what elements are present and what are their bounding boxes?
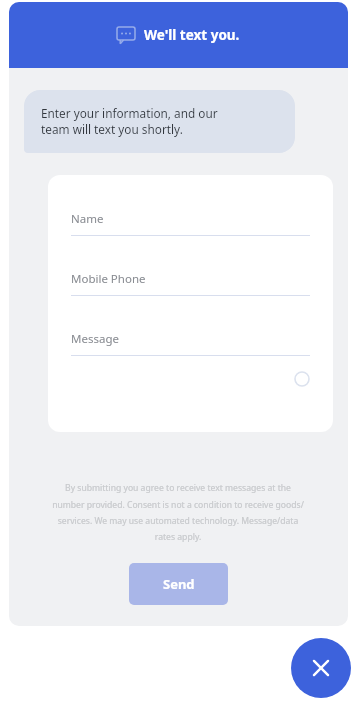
staticText: Enter your information, and our team wil…: [41, 105, 218, 138]
staticText: We'll text you.: [144, 26, 240, 44]
staticText: Message: [71, 331, 119, 347]
staticText: Send: [163, 575, 195, 593]
staticText: Mobile Phone: [71, 271, 146, 287]
button[interactable]: Send: [129, 563, 228, 605]
button[interactable]: Message: [71, 331, 310, 356]
staticText: Name: [71, 211, 104, 227]
button[interactable]: Name: [71, 211, 310, 236]
staticText: By submitting you agree to receive text …: [48, 482, 308, 542]
button[interactable]: Mobile Phone: [71, 271, 310, 296]
button[interactable]: We'll text you.: [9, 2, 348, 68]
button[interactable]: Select option: [294, 371, 310, 387]
button[interactable]: Close chat: [291, 638, 351, 698]
